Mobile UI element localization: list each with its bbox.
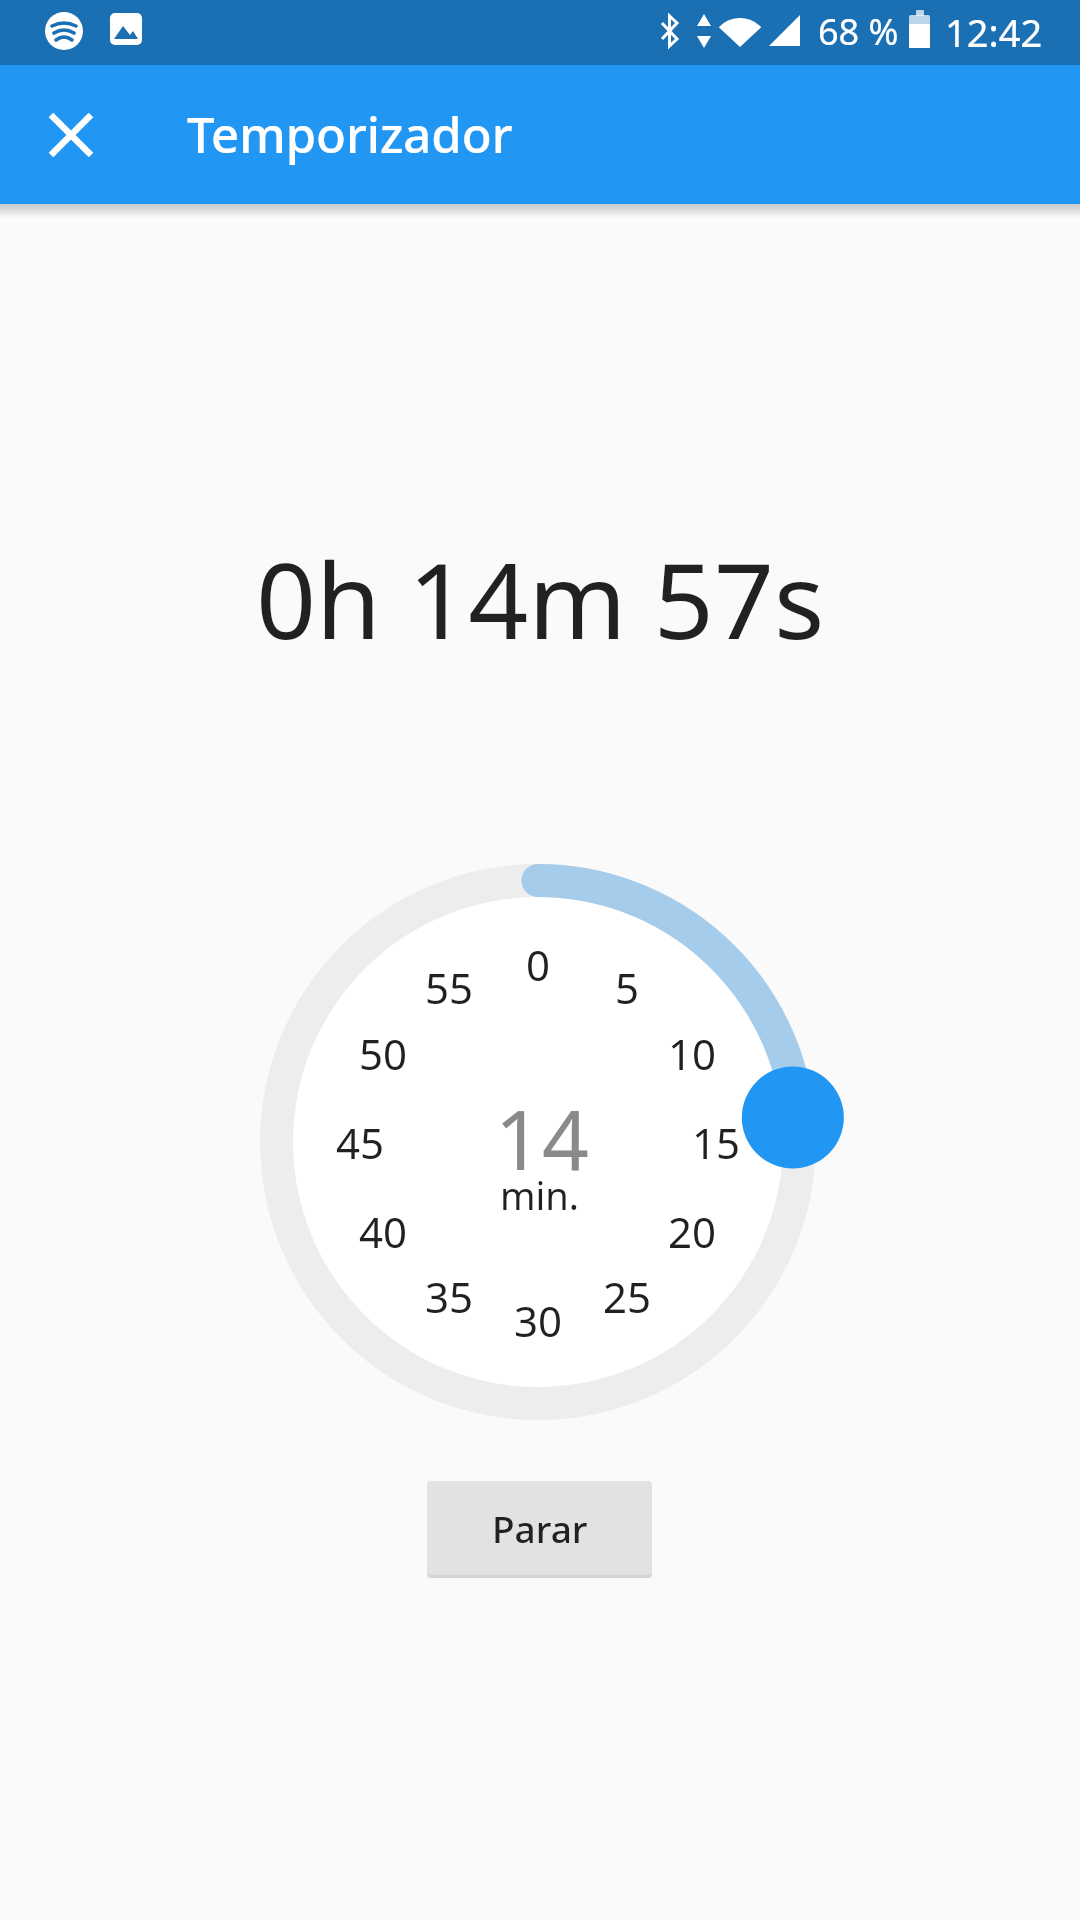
staticText: 14 [495,1082,589,1194]
staticText: 12:42 [945,6,1043,56]
staticText: Temporizador [187,101,513,168]
staticText: 5 [615,959,640,1016]
staticText: 68 % [818,7,899,56]
staticText: 35 [425,1268,474,1325]
staticText: 20 [668,1203,717,1260]
staticText: 40 [359,1203,408,1260]
staticText: 45 [336,1114,385,1171]
button[interactable]: Parar [427,1481,652,1575]
staticText: 55 [425,959,474,1016]
staticText: 0 [526,936,551,993]
staticText: 10 [668,1025,717,1082]
staticText: Parar [492,1503,588,1553]
staticText: 50 [359,1025,408,1082]
staticText: 15 [692,1114,741,1171]
staticText: 0h 14m 57s [256,527,825,670]
staticText: 25 [603,1268,652,1325]
staticText: 30 [514,1292,563,1349]
button[interactable] [31,95,111,175]
staticText: min. [500,1169,580,1219]
button[interactable] [260,864,816,1420]
